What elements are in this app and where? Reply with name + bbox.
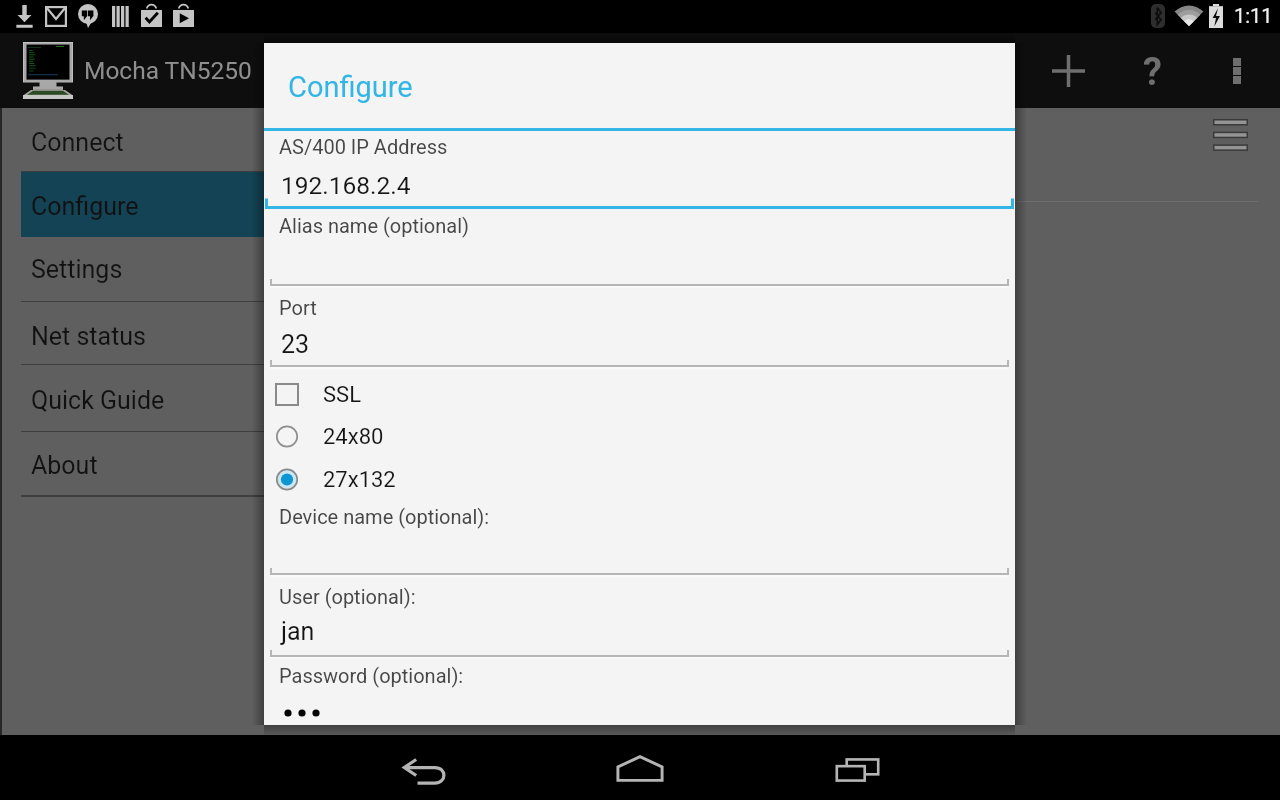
staticText: Mocha TN5250	[84, 56, 252, 85]
staticText: SSL	[323, 382, 361, 408]
staticText: Quick Guide	[31, 386, 165, 415]
staticText: Alias name (optional)	[279, 214, 470, 237]
button[interactable]: 24x80	[264, 425, 1015, 468]
staticText: Configure	[288, 70, 413, 104]
staticText: User (optional):	[279, 585, 416, 608]
button[interactable]: Recents	[803, 735, 911, 800]
button[interactable]: Connect	[2, 112, 264, 172]
staticText: 192.168.2.4	[281, 171, 411, 200]
button[interactable]: Quick Guide	[2, 365, 264, 432]
staticText: Net status	[31, 322, 147, 351]
button[interactable]: Help	[1114, 34, 1190, 108]
staticText: 24x80	[323, 424, 384, 450]
staticText: 1:11	[1234, 4, 1273, 27]
button[interactable]: 27x132	[264, 468, 1015, 511]
button[interactable]: Settings	[2, 237, 264, 302]
staticText: 27x132	[323, 467, 396, 493]
button[interactable]: Back	[369, 735, 477, 800]
staticText: Settings	[31, 255, 123, 284]
staticText: ?	[1143, 50, 1162, 95]
staticText: Connect	[31, 128, 124, 157]
staticText: Device name (optional):	[279, 505, 490, 528]
staticText: About	[31, 451, 98, 480]
button[interactable]: Add	[1028, 34, 1108, 108]
button[interactable]: Reorder list	[1200, 112, 1262, 160]
button[interactable]: Home	[586, 735, 694, 800]
button[interactable]: SSL	[264, 383, 1015, 426]
staticText: AS/400 IP Address	[279, 135, 448, 158]
button[interactable]: Configure	[2, 172, 264, 237]
staticText: Port	[279, 296, 317, 319]
staticText: 23	[281, 330, 310, 359]
button[interactable]: More options	[1200, 34, 1274, 108]
staticText: Password (optional):	[279, 664, 464, 687]
button[interactable]: Net status	[2, 302, 264, 365]
staticText: jan	[281, 617, 315, 646]
button[interactable]: About	[2, 432, 264, 496]
staticText: Configure	[31, 192, 139, 221]
